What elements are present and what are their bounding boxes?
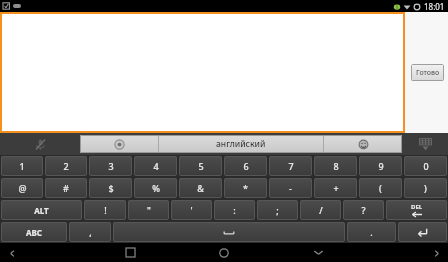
staticText: ( — [379, 182, 382, 194]
staticText: . — [370, 226, 373, 238]
button[interactable]: . — [347, 222, 396, 242]
staticText: 5 — [198, 160, 204, 172]
staticText: : — [233, 204, 236, 216]
button[interactable]: Recent apps — [115, 243, 145, 262]
button[interactable]: Hide keyboard — [303, 243, 333, 262]
staticText: английский — [216, 138, 266, 150]
button[interactable] — [0, 12, 405, 133]
button[interactable]: ) — [404, 178, 447, 198]
button[interactable]: , — [69, 222, 111, 242]
staticText: ABC — [26, 227, 42, 238]
staticText: 6 — [243, 160, 249, 172]
staticText: Готово — [416, 68, 440, 78]
staticText: 9 — [378, 160, 384, 172]
button[interactable]: / — [300, 200, 341, 220]
button[interactable]: Emoji — [324, 135, 402, 153]
button[interactable]: 8 — [314, 156, 357, 176]
button[interactable]: английский — [159, 135, 323, 153]
staticText: 4 — [153, 160, 159, 172]
button[interactable]: + — [314, 178, 357, 198]
button[interactable]: Готово — [411, 64, 444, 81]
staticText: 18:01 — [424, 1, 445, 12]
button[interactable]: ! — [84, 200, 126, 220]
staticText: 3 — [108, 160, 114, 172]
staticText: ALT — [34, 205, 49, 216]
staticText: # — [63, 182, 69, 194]
button[interactable]: $ — [89, 178, 132, 198]
button[interactable]: 7 — [269, 156, 312, 176]
staticText: 8 — [333, 160, 339, 172]
button[interactable]: 0 — [404, 156, 447, 176]
button[interactable]: 5 — [179, 156, 222, 176]
staticText: @ — [18, 182, 27, 194]
button[interactable]: ' — [171, 200, 212, 220]
button[interactable]: 3 — [89, 156, 132, 176]
staticText: 1 — [19, 160, 25, 172]
staticText: ! — [104, 204, 107, 216]
staticText: ; — [276, 204, 279, 216]
staticText: ) — [424, 182, 427, 194]
button[interactable]: Hide keyboard — [402, 133, 448, 155]
button[interactable]: 4 — [134, 156, 177, 176]
button[interactable]: @ — [1, 178, 43, 198]
staticText: 2 — [63, 160, 69, 172]
button[interactable]: - — [269, 178, 312, 198]
staticText: ' — [190, 204, 193, 216]
button[interactable] — [113, 222, 345, 242]
button[interactable]: % — [134, 178, 177, 198]
staticText: % — [152, 182, 160, 194]
button[interactable]: Input settings — [80, 135, 158, 153]
button[interactable]: 2 — [45, 156, 87, 176]
staticText: 0 — [423, 160, 429, 172]
staticText: + — [333, 182, 339, 194]
staticText: $ — [108, 182, 114, 194]
button[interactable]: ABC — [1, 222, 67, 242]
button[interactable]: 9 — [359, 156, 402, 176]
button[interactable]: DEL — [386, 200, 447, 220]
staticText: DEL — [411, 203, 423, 211]
button[interactable]: ? — [343, 200, 384, 220]
button[interactable] — [398, 222, 447, 242]
button[interactable]: & — [179, 178, 222, 198]
button[interactable]: ; — [257, 200, 298, 220]
button[interactable]: Home — [209, 243, 239, 262]
button[interactable]: Voice input disabled — [0, 133, 80, 155]
button[interactable]: # — [45, 178, 87, 198]
staticText: - — [289, 182, 292, 194]
button[interactable]: * — [224, 178, 267, 198]
button[interactable]: 6 — [224, 156, 267, 176]
button[interactable]: ALT — [1, 200, 82, 220]
button[interactable]: Previous — [4, 245, 20, 261]
button[interactable]: 1 — [1, 156, 43, 176]
button[interactable]: " — [128, 200, 169, 220]
staticText: / — [319, 204, 323, 216]
staticText: 7 — [288, 160, 294, 172]
button[interactable]: ( — [359, 178, 402, 198]
staticText: * — [243, 182, 248, 194]
button[interactable]: : — [214, 200, 255, 220]
staticText: " — [147, 204, 151, 216]
button[interactable]: Next — [428, 245, 444, 261]
staticText: & — [197, 182, 204, 194]
staticText: ? — [361, 204, 366, 216]
staticText: , — [89, 226, 92, 238]
